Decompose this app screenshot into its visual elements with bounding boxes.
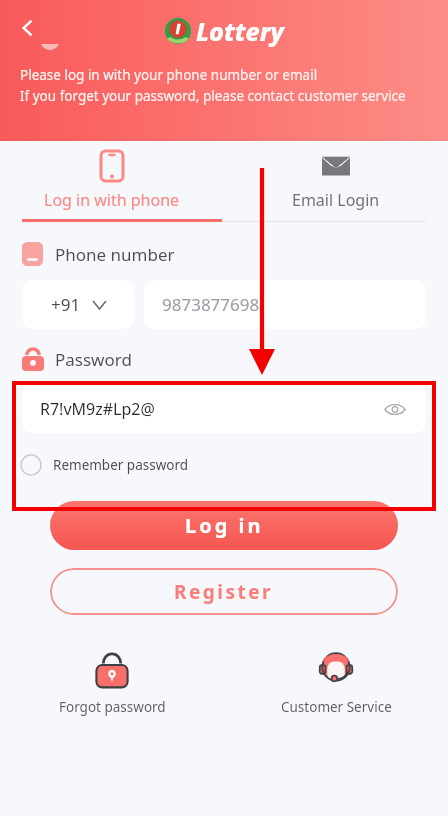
- staticText: Password: [55, 348, 132, 371]
- staticText: 9873877698: [162, 293, 260, 316]
- button[interactable]: Back: [8, 8, 48, 48]
- button[interactable]: Register: [50, 568, 398, 615]
- button[interactable]: Customer Service: [224, 645, 448, 720]
- staticText: Remember password: [53, 456, 189, 474]
- staticText: If you forget your password, please cont…: [20, 87, 406, 105]
- staticText: Log in: [185, 512, 264, 539]
- button[interactable]: Log in with phone: [0, 141, 224, 211]
- staticText: Email Login: [292, 189, 380, 211]
- button[interactable]: Email Login: [224, 141, 448, 211]
- staticText: Forgot password: [59, 698, 166, 716]
- button[interactable]: R7!vM9z#Lp2@: [22, 384, 426, 433]
- staticText: Phone number: [55, 243, 175, 266]
- button[interactable]: +91: [22, 280, 134, 329]
- staticText: Please log in with your phone number or …: [20, 66, 318, 84]
- button[interactable]: Forgot password: [0, 645, 224, 720]
- staticText: R7!vM9z#Lp2@: [40, 398, 155, 420]
- staticText: Lottery: [196, 14, 284, 48]
- button[interactable]: Show password: [382, 396, 408, 422]
- button[interactable]: Remember password: [20, 454, 189, 476]
- staticText: Log in with phone: [44, 189, 180, 211]
- staticText: +91: [51, 293, 81, 316]
- button[interactable]: 9873877698: [144, 280, 426, 329]
- staticText: Customer Service: [281, 698, 392, 716]
- button[interactable]: Log in: [50, 501, 398, 550]
- staticText: Register: [174, 579, 274, 605]
